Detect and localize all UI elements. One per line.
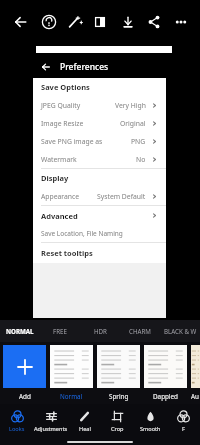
button[interactable]: Back <box>10 11 32 33</box>
other: Back <box>40 61 52 73</box>
staticText: BLACK & W <box>164 327 197 335</box>
button[interactable] <box>191 345 200 388</box>
staticText: F <box>182 425 185 433</box>
staticText: NORMAL <box>6 327 34 335</box>
staticText: CHARM <box>129 327 151 335</box>
staticText: Display <box>41 173 69 183</box>
staticText: Save PNG image as <box>41 137 103 146</box>
staticText: Advanced <box>41 211 78 221</box>
staticText: Preferences <box>60 61 109 73</box>
staticText: Crop <box>111 425 124 433</box>
button[interactable]: Share <box>143 11 165 33</box>
button[interactable]: Smooth <box>134 404 167 438</box>
button[interactable] <box>97 345 140 388</box>
button[interactable]: Looks <box>0 404 34 438</box>
staticText: Original <box>120 119 146 128</box>
staticText: Adjustments <box>34 425 68 433</box>
button[interactable]: Crop <box>101 404 134 438</box>
staticText: Save Location, File Naming <box>41 229 123 238</box>
button[interactable]: Add look <box>3 345 46 388</box>
staticText: Add <box>19 392 31 401</box>
staticText: Spring <box>109 392 129 401</box>
staticText: No <box>136 155 146 164</box>
button[interactable]: F <box>167 404 200 438</box>
button[interactable]: CHARM <box>120 320 160 342</box>
staticText: Heal <box>79 425 91 433</box>
button[interactable]: Auto enhance <box>63 11 85 33</box>
button[interactable]: Adjustments <box>34 404 68 438</box>
staticText: FREE <box>53 327 67 335</box>
button[interactable]: Heal <box>68 404 101 438</box>
button[interactable]: Compare <box>89 11 111 33</box>
staticText: Appearance <box>41 192 80 201</box>
button[interactable]: FREE <box>40 320 80 342</box>
staticText: HDR <box>94 327 107 335</box>
button[interactable]: Watermark <box>33 150 166 168</box>
staticText: Autumn <box>191 392 200 401</box>
staticText: Watermark <box>41 155 77 164</box>
staticText: Very High <box>115 101 146 110</box>
button[interactable]: Advanced <box>33 206 166 225</box>
button[interactable]: Save PNG image as <box>33 132 166 150</box>
button[interactable]: JPEG Quality <box>33 96 166 114</box>
staticText: Smooth <box>140 425 161 433</box>
staticText: Looks <box>9 425 25 433</box>
button[interactable]: HDR <box>80 320 120 342</box>
button[interactable]: Appearance <box>33 187 166 205</box>
button[interactable]: Help <box>38 11 60 33</box>
button[interactable]: Image Resize <box>33 114 166 132</box>
button[interactable]: Back <box>33 56 166 78</box>
staticText: Dappled <box>153 392 178 401</box>
button[interactable]: BLACK & W <box>160 320 200 342</box>
staticText: Image Resize <box>41 119 84 128</box>
staticText: PNG <box>131 137 146 146</box>
staticText: Save Options <box>41 82 90 92</box>
button[interactable]: Reset tooltips <box>33 243 166 263</box>
button[interactable] <box>50 345 93 388</box>
button[interactable]: Export <box>117 11 139 33</box>
button[interactable] <box>144 345 187 388</box>
button[interactable]: More options <box>170 11 192 33</box>
staticText: Reset tooltips <box>41 248 93 258</box>
staticText: System Default <box>97 192 146 201</box>
button[interactable]: NORMAL <box>0 320 40 342</box>
staticText: Normal <box>60 392 83 401</box>
staticText: JPEG Quality <box>41 101 81 110</box>
